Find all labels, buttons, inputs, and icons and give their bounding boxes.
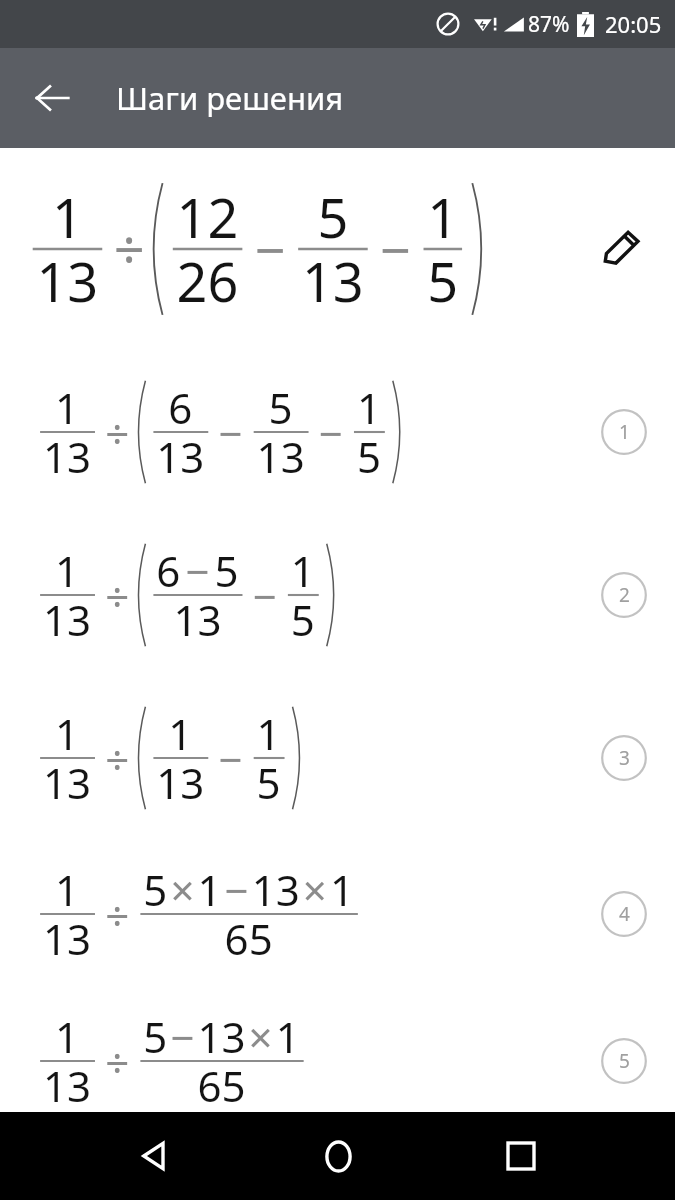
staticText: 87% [528, 10, 570, 39]
button[interactable]: Recent apps [492, 1127, 550, 1185]
button[interactable]: Step 1 [601, 409, 647, 455]
button[interactable]: Edit [597, 224, 647, 274]
staticText: 3 [619, 745, 630, 771]
staticText: 5 [619, 1048, 630, 1074]
button[interactable]: Step 2 [601, 572, 647, 618]
staticText: 20:05 [605, 9, 662, 39]
button[interactable]: Back [25, 71, 79, 125]
button[interactable]: Home [309, 1127, 367, 1185]
staticText: 2 [619, 582, 630, 608]
button[interactable]: Step 5 [601, 1038, 647, 1084]
staticText: 1 [619, 419, 630, 445]
button[interactable]: Step 3 [601, 735, 647, 781]
staticText: Шаги решения [116, 77, 344, 119]
button[interactable]: Step 4 [601, 891, 647, 937]
staticText: 4 [619, 901, 630, 927]
button[interactable]: Back [125, 1127, 183, 1185]
